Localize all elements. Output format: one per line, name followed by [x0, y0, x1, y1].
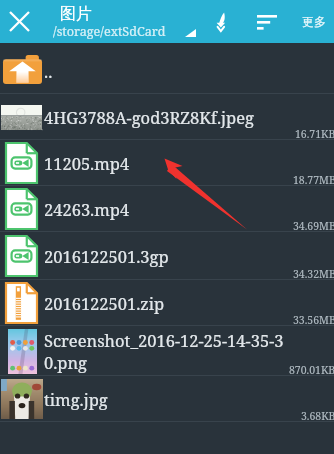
staticText: 16.71KB — [295, 127, 334, 141]
staticText: 870.01KB — [289, 363, 334, 377]
button[interactable]: 更多 — [296, 0, 332, 43]
staticText: 3.68KB — [301, 409, 334, 423]
button[interactable]: Sort — [247, 0, 287, 43]
staticText: /storage/extSdCard — [53, 23, 166, 40]
staticText: 11205.mp4 — [44, 152, 130, 174]
button[interactable]: 24263.mp4 — [0, 186, 334, 232]
staticText: Screenshot_2016-12-25-14-35-30.png — [44, 329, 292, 373]
button[interactable]: 4HG3788A-god3RZ8Kf.jpeg — [0, 94, 334, 140]
button[interactable]: 2016122501.3gp — [0, 232, 334, 280]
staticText: 更多 — [302, 14, 326, 29]
staticText: 4HG3788A-god3RZ8Kf.jpeg — [44, 106, 254, 128]
button[interactable]: timg.jpg — [0, 376, 334, 422]
button[interactable]: 图片 — [52, 0, 202, 43]
staticText: 33.56MB — [293, 313, 334, 327]
staticText: 34.69MB — [293, 219, 334, 233]
staticText: 图片 — [60, 4, 92, 24]
staticText: 2016122501.zip — [44, 292, 165, 314]
button[interactable]: .. — [0, 43, 334, 94]
staticText: .. — [44, 60, 53, 82]
staticText: 2016122501.3gp — [44, 245, 169, 267]
button[interactable]: 11205.mp4 — [0, 140, 334, 186]
staticText: 18.77MB — [293, 173, 334, 187]
staticText: 34.32MB — [293, 267, 334, 281]
button[interactable]: Transfer — [205, 0, 237, 43]
staticText: timg.jpg — [44, 388, 108, 410]
button[interactable]: 2016122501.zip — [0, 280, 334, 326]
staticText: 24263.mp4 — [44, 198, 130, 220]
button[interactable]: Screenshot_2016-12-25-14-35-30.png — [0, 326, 334, 376]
button[interactable]: Close — [0, 0, 39, 43]
